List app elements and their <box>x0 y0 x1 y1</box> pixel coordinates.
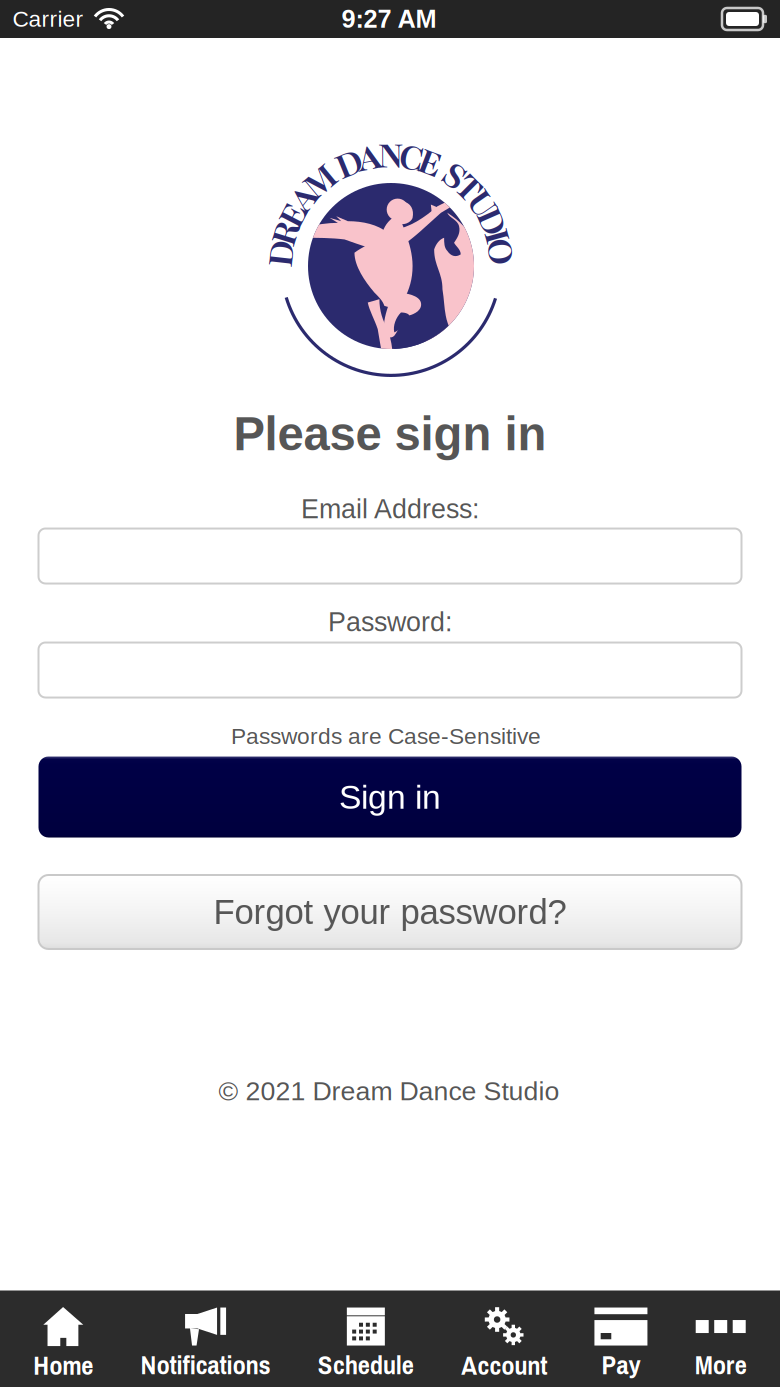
staticText: Passwords are Case-Sensitive <box>231 723 541 749</box>
staticText: Home <box>33 1347 93 1383</box>
staticText: U <box>469 179 494 227</box>
button[interactable]: Forgot your password? <box>38 875 741 949</box>
button[interactable]: More <box>681 1290 761 1387</box>
button[interactable]: Notifications <box>127 1290 285 1387</box>
staticText: Schedule <box>318 1346 414 1382</box>
staticText: Carrier <box>12 6 83 32</box>
staticText: Password: <box>328 607 452 637</box>
button[interactable]: Schedule <box>304 1290 428 1387</box>
staticText: Sign in <box>339 778 441 816</box>
staticText: T <box>458 164 480 212</box>
staticText: Please sign in <box>233 408 546 460</box>
button[interactable]: Account <box>447 1290 561 1387</box>
staticText: D <box>336 140 363 188</box>
staticText: © 2021 Dream Dance Studio <box>218 1076 559 1106</box>
staticText: D <box>268 230 295 278</box>
staticText: 9:27 AM <box>341 5 436 33</box>
staticText: More <box>695 1346 747 1382</box>
staticText: N <box>378 132 404 180</box>
button[interactable]: Pay <box>580 1290 661 1387</box>
staticText: Forgot your password? <box>213 893 566 931</box>
button[interactable]: Home <box>19 1290 107 1387</box>
staticText <box>439 145 447 193</box>
staticText: R <box>274 209 298 257</box>
staticText: M <box>304 157 337 205</box>
staticText: Email Address: <box>301 494 479 524</box>
staticText: C <box>399 134 423 182</box>
staticText: O <box>487 228 514 276</box>
staticText: D <box>478 198 505 246</box>
staticText: Account <box>461 1347 547 1383</box>
staticText: I <box>490 212 504 260</box>
staticText <box>331 147 339 195</box>
staticText: E <box>419 139 442 187</box>
staticText: Pay <box>601 1346 640 1382</box>
staticText: S <box>444 152 465 200</box>
staticText: E <box>282 191 305 239</box>
button[interactable]: Sign in <box>38 756 741 837</box>
staticText: Notifications <box>141 1346 271 1382</box>
staticText: A <box>357 134 383 182</box>
staticText: A <box>291 174 317 222</box>
